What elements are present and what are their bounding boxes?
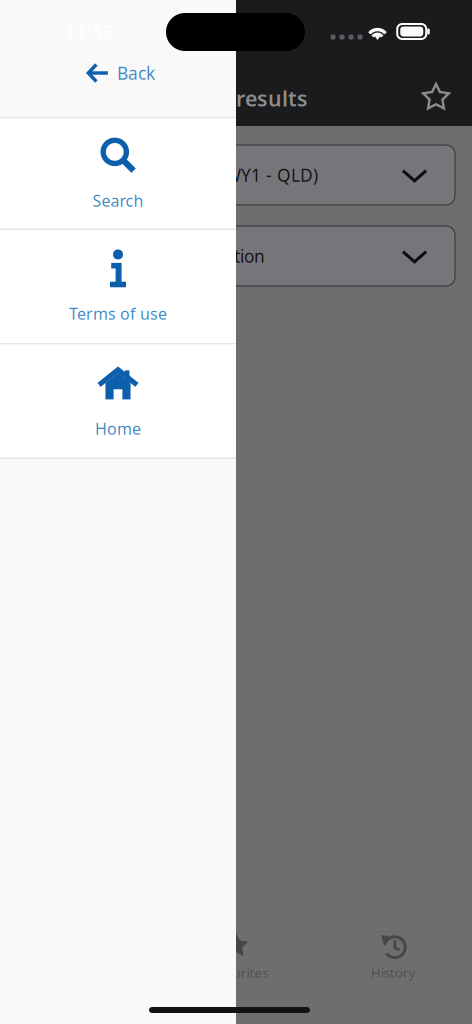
staticText: Favourites (203, 964, 268, 981)
staticText: Terms of use (69, 303, 167, 324)
button[interactable]: Search (0, 118, 236, 228)
button[interactable]: Please choose your direction (17, 226, 455, 286)
button[interactable]: Add to favourites (415, 77, 457, 118)
button[interactable]: History (315, 932, 472, 982)
button[interactable]: Home (0, 344, 236, 457)
staticText: History (371, 964, 416, 981)
button[interactable]: Favourites (157, 932, 315, 982)
button[interactable]: Back (76, 56, 165, 90)
staticText: Home (95, 418, 141, 439)
button[interactable]: Gold Coast Highway, (HWY1 - QLD) (17, 145, 455, 205)
staticText: Search results (160, 84, 308, 112)
button[interactable]: Terms of use (0, 230, 236, 343)
staticText: Search (92, 190, 143, 211)
staticText: Please choose your direction (33, 244, 265, 267)
staticText: Gold Coast Highway, (HWY1 - QLD) (33, 163, 318, 186)
staticText: Back (117, 61, 155, 84)
